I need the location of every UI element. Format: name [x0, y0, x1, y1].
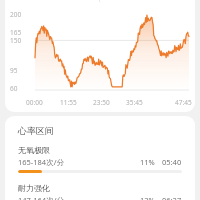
- staticText: 13%: [140, 195, 155, 200]
- staticText: 150: [10, 36, 22, 45]
- staticText: 35:45: [126, 98, 143, 107]
- staticText: 耐力强化: [18, 183, 50, 193]
- staticText: 165: [10, 28, 22, 37]
- staticText: 60: [10, 84, 18, 93]
- button[interactable]: 耐力强化: [18, 183, 182, 200]
- staticText: 23:50: [93, 98, 110, 107]
- staticText: 11:55: [60, 98, 77, 107]
- staticText: 95: [10, 66, 18, 75]
- staticText: 06:27: [162, 195, 182, 200]
- staticText: 200: [10, 10, 22, 19]
- staticText: 165-184次/分: [18, 157, 64, 167]
- staticText: 心率区间: [18, 125, 54, 136]
- staticText: 147-164次/分: [18, 195, 64, 200]
- button[interactable]: 平均: [5, 0, 195, 112]
- staticText: 47:45: [175, 98, 192, 107]
- staticText: 05:40: [162, 157, 182, 167]
- staticText: 00:00: [26, 98, 43, 107]
- staticText: 11%: [140, 157, 155, 167]
- staticText: 无氧极限: [18, 145, 50, 155]
- button[interactable]: 无氧极限: [18, 145, 182, 173]
